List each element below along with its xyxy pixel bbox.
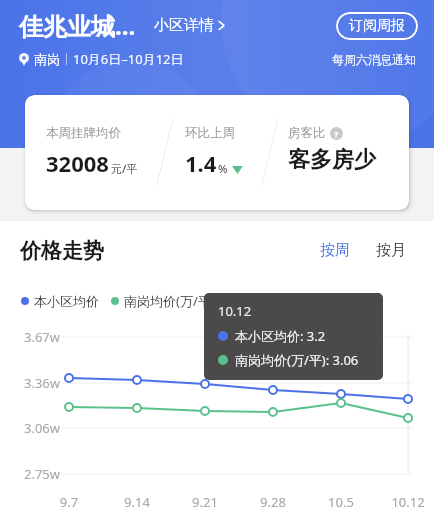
staticText: 2.75w: [16, 465, 60, 483]
staticText: 10.5: [315, 493, 367, 511]
staticText: 按月: [376, 241, 406, 260]
button[interactable]: 房客比说明: [330, 127, 343, 140]
staticText: 10.12: [218, 302, 252, 320]
staticText: 房客比: [288, 125, 326, 141]
staticText: 小区详情: [154, 16, 214, 35]
staticText: 本小区均价: 3.2: [235, 327, 326, 345]
staticText: 价格走势: [20, 238, 104, 264]
staticText: 南岗: [34, 51, 60, 67]
staticText: 10月6日–10月12日: [73, 50, 184, 68]
staticText: 环比上周: [185, 125, 235, 141]
button[interactable]: 按周: [314, 237, 356, 264]
staticText: 客多房少: [288, 146, 376, 174]
staticText: 32008: [46, 148, 109, 178]
staticText: 3.36w: [16, 374, 60, 392]
staticText: 每周六消息通知: [332, 52, 416, 67]
staticText: 佳兆业城...: [19, 9, 136, 42]
staticText: 订阅周报: [349, 17, 405, 35]
staticText: 9.14: [111, 493, 163, 511]
button[interactable]: 本周挂牌均价: [25, 95, 409, 210]
staticText: 南岗均价(万/平): [124, 292, 215, 310]
staticText: 按周: [320, 241, 350, 260]
button[interactable]: 按月: [370, 237, 412, 264]
staticText: 本周挂牌均价: [46, 125, 121, 141]
staticText: 1.4: [185, 148, 217, 178]
staticText: 3.06w: [16, 419, 60, 437]
staticText: 10.12: [382, 493, 434, 511]
staticText: 本小区均价: [34, 293, 99, 309]
staticText: 南岗均价(万/平): 3.06: [235, 351, 359, 369]
staticText: ?: [334, 128, 339, 140]
button[interactable]: 小区详情: [152, 12, 228, 39]
staticText: 9.7: [43, 493, 95, 511]
staticText: 3.67w: [16, 328, 60, 346]
staticText: 元/平: [111, 161, 138, 176]
staticText: 9.28: [247, 493, 299, 511]
button[interactable]: 订阅周报: [336, 12, 418, 40]
staticText: %: [218, 161, 228, 176]
staticText: 9.21: [179, 493, 231, 511]
